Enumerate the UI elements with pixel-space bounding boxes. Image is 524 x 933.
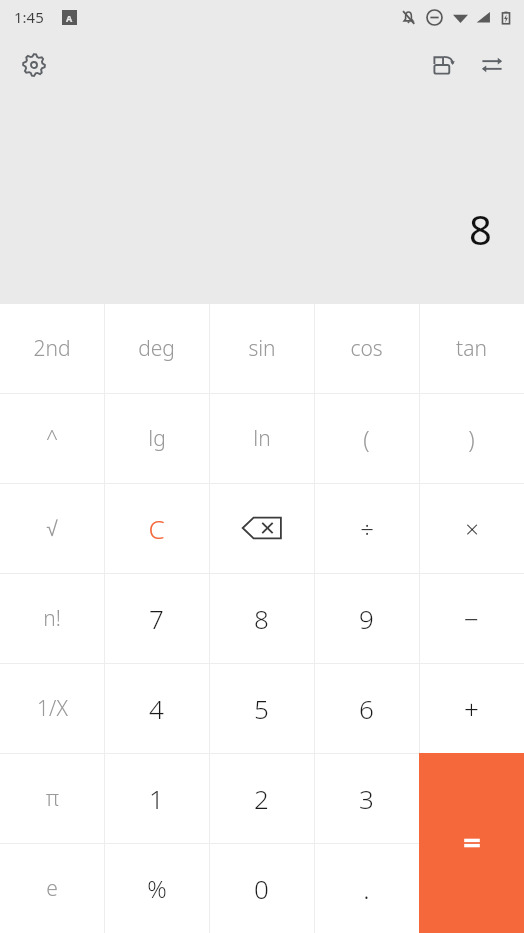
staticText: ) (468, 423, 475, 454)
button[interactable]: 1/X (0, 663, 104, 753)
button[interactable]: + (419, 663, 524, 753)
staticText: + (464, 691, 479, 726)
button[interactable]: cos (314, 304, 419, 393)
button[interactable]: − (419, 573, 524, 663)
button[interactable]: % (104, 843, 209, 933)
staticText: 4 (149, 691, 164, 726)
staticText: tan (456, 334, 487, 363)
button[interactable]: 0 (209, 843, 314, 933)
staticText: − (464, 601, 479, 636)
button[interactable]: 9 (314, 573, 419, 663)
button[interactable]: × (419, 483, 524, 573)
staticText: π (46, 784, 59, 813)
staticText: 7 (149, 601, 164, 636)
button[interactable]: Rotate screen (420, 41, 468, 89)
button[interactable]: . (314, 843, 419, 933)
button[interactable]: ^ (0, 393, 104, 483)
button[interactable]: 8 (209, 573, 314, 663)
staticText: n! (43, 604, 61, 633)
button[interactable]: n! (0, 573, 104, 663)
button[interactable]: 6 (314, 663, 419, 753)
button[interactable]: 1 (104, 753, 209, 843)
button[interactable]: 4 (104, 663, 209, 753)
button[interactable] (209, 483, 314, 573)
staticText: % (147, 872, 167, 905)
staticText: ^ (46, 424, 58, 453)
staticText: sin (248, 334, 276, 363)
staticText: 6 (359, 691, 374, 726)
staticText: ( (363, 423, 370, 454)
staticText: 9 (359, 601, 374, 636)
button[interactable]: Unit converter (468, 41, 516, 89)
button[interactable]: 3 (314, 753, 419, 843)
staticText: A (66, 12, 73, 24)
button[interactable]: π (0, 753, 104, 843)
button[interactable]: ( (314, 393, 419, 483)
staticText: C (148, 511, 165, 546)
staticText: 8 (469, 202, 492, 256)
staticText: ÷ (360, 512, 374, 545)
staticText: ln (253, 424, 271, 453)
staticText: cos (350, 334, 383, 363)
button[interactable]: deg (104, 304, 209, 393)
button[interactable]: C (104, 483, 209, 573)
staticText: 5 (254, 691, 269, 726)
staticText: 2 (254, 781, 269, 816)
button[interactable]: 5 (209, 663, 314, 753)
button[interactable]: √ (0, 483, 104, 573)
button[interactable]: 2 (209, 753, 314, 843)
staticText: √ (46, 517, 58, 540)
staticText: . (363, 871, 370, 906)
staticText: e (46, 874, 58, 903)
staticText: 3 (359, 781, 374, 816)
button[interactable]: lg (104, 393, 209, 483)
staticText: 1:45 (14, 7, 44, 27)
staticText: × (465, 512, 479, 545)
button[interactable]: ÷ (314, 483, 419, 573)
button[interactable]: ) (419, 393, 524, 483)
button[interactable]: e (0, 843, 104, 933)
staticText: 1 (149, 781, 164, 816)
staticText: lg (148, 424, 166, 453)
button[interactable]: 2nd (0, 304, 104, 393)
button[interactable]: tan (419, 304, 524, 393)
button[interactable]: sin (209, 304, 314, 393)
staticText: 0 (254, 871, 269, 906)
staticText: 2nd (33, 334, 71, 363)
staticText: 1/X (37, 694, 68, 723)
button[interactable]: Settings (10, 41, 58, 89)
button[interactable]: ln (209, 393, 314, 483)
staticText: 8 (254, 601, 269, 636)
button[interactable] (419, 753, 524, 933)
button[interactable]: 7 (104, 573, 209, 663)
staticText: deg (138, 334, 175, 363)
